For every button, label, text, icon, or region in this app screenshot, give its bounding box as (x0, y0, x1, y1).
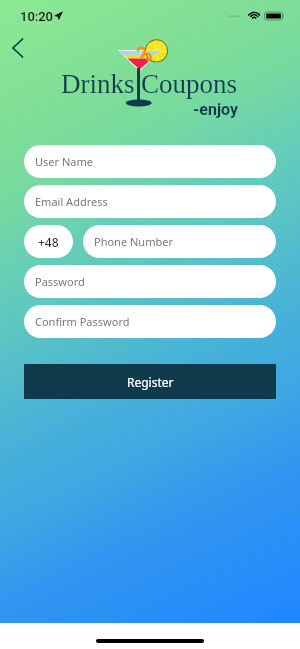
staticText: +48 (38, 234, 59, 250)
button[interactable]: Register (24, 364, 276, 399)
staticText: 10:20 (20, 9, 53, 24)
button[interactable]: +48 (24, 225, 73, 258)
staticText: Phone Number (94, 234, 173, 249)
button[interactable]: Back (4, 33, 34, 63)
staticText: Coupons (141, 69, 238, 99)
staticText: Register (127, 374, 174, 390)
button[interactable]: Phone Number (83, 225, 276, 258)
staticText: Email Address (35, 194, 108, 209)
button[interactable]: Password (24, 265, 276, 298)
staticText: Password (35, 274, 85, 289)
button[interactable]: Email Address (24, 185, 276, 218)
button[interactable]: Confirm Password (24, 305, 276, 338)
staticText: -enjoy (193, 100, 239, 119)
staticText: Confirm Password (35, 314, 130, 329)
staticText: User Name (35, 154, 93, 169)
staticText: Drinks (61, 69, 135, 99)
button[interactable]: User Name (24, 145, 276, 178)
